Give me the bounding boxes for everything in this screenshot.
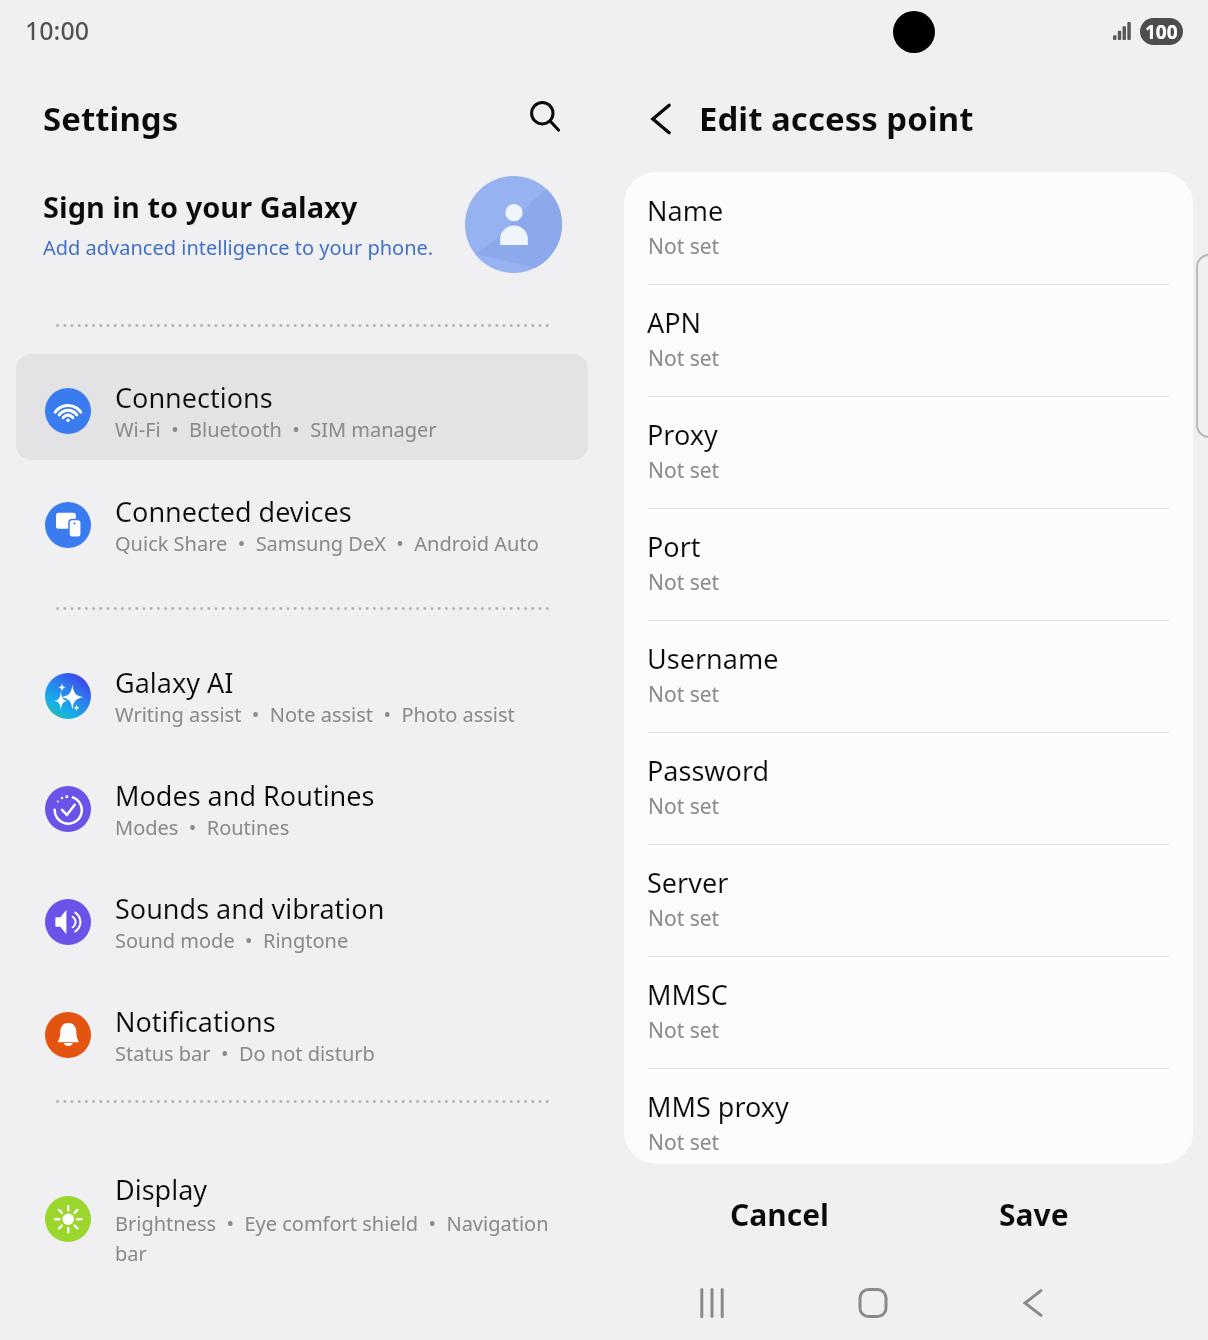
button[interactable]: Cancel [653,1168,907,1260]
staticText: Port [647,528,701,565]
button[interactable]: Recents [672,1263,752,1340]
button[interactable]: Notifications [16,978,588,1084]
staticText: Not set [648,792,720,821]
staticText: Password [647,752,770,789]
button[interactable]: Save [907,1168,1161,1260]
staticText: Connections [115,379,273,416]
staticText: Brightness • Eye comfort shield • Naviga… [115,1210,549,1267]
staticText: Cancel [730,1194,830,1235]
button[interactable]: Search [517,89,575,147]
staticText: Notifications [115,1003,276,1040]
staticText: Edit access point [699,96,974,141]
button[interactable]: Connected devices [16,468,588,574]
staticText: Name [647,192,724,229]
staticText: Modes • Routines [115,814,290,841]
staticText: Add advanced intelligence to your phone. [43,234,434,261]
staticText: Proxy [647,416,718,453]
staticText: Display [115,1171,208,1208]
button[interactable]: Connections [16,354,588,460]
button[interactable]: APN [624,284,1193,396]
staticText: Wi-Fi • Bluetooth • SIM manager [115,416,437,443]
staticText: Not set [648,680,720,709]
staticText: Galaxy AI [115,664,234,701]
staticText: Server [647,864,729,901]
staticText: Status bar • Do not disturb [115,1040,375,1067]
button[interactable]: Galaxy AI [16,639,588,745]
staticText: Sign in to your Galaxy [43,187,358,226]
staticText: 100 [1145,19,1178,45]
button[interactable]: Sounds and vibration [16,865,588,971]
button[interactable]: Back [633,91,689,147]
button[interactable]: Server [624,844,1193,956]
button[interactable]: Modes and Routines [16,752,588,858]
staticText: MMSC [647,976,728,1013]
staticText: Connected devices [115,493,352,530]
staticText: Not set [648,232,720,261]
staticText: Sounds and vibration [115,890,385,927]
button[interactable]: Username [624,620,1193,732]
staticText: 10:00 [25,13,90,47]
staticText: Not set [648,904,720,933]
button[interactable]: Display [16,1155,588,1285]
button[interactable]: Name [624,172,1193,284]
staticText: Settings [43,96,179,141]
button[interactable]: Home [833,1263,913,1340]
button[interactable]: Proxy [624,396,1193,508]
staticText: Not set [648,568,720,597]
button[interactable]: MMSC [624,956,1193,1068]
staticText: Not set [648,456,720,485]
staticText: Not set [648,1128,720,1157]
button[interactable]: Sign in to your Galaxy [16,172,588,278]
staticText: APN [647,304,702,341]
staticText: Modes and Routines [115,777,375,814]
staticText: Sound mode • Ringtone [115,927,349,954]
staticText: Username [647,640,779,677]
button[interactable]: Password [624,732,1193,844]
staticText: Not set [648,344,720,373]
staticText: Not set [648,1016,720,1045]
staticText: Save [999,1194,1069,1235]
staticText: MMS proxy [647,1088,789,1125]
button[interactable]: Back [993,1263,1073,1340]
button[interactable]: Port [624,508,1193,620]
staticText: Writing assist • Note assist • Photo ass… [115,701,515,728]
button[interactable]: MMS proxy [624,1068,1193,1164]
staticText: Quick Share • Samsung DeX • Android Auto [115,530,539,557]
